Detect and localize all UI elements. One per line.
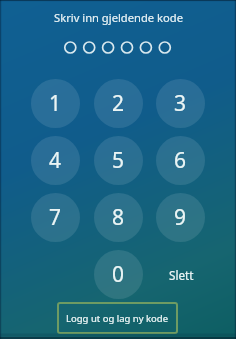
staticText: 6 (174, 146, 187, 175)
button[interactable]: Logg ut og lag ny kode (57, 302, 178, 334)
staticText: 5 (112, 146, 125, 175)
button[interactable]: 7 (31, 193, 80, 242)
staticText: 7 (49, 203, 62, 232)
button[interactable]: 8 (94, 193, 143, 242)
button[interactable]: 3 (156, 79, 205, 128)
button[interactable]: 1 (31, 79, 80, 128)
staticText: 9 (174, 203, 187, 232)
staticText: 4 (49, 146, 62, 175)
button[interactable]: 5 (94, 136, 143, 185)
staticText: 3 (174, 89, 187, 118)
staticText: 8 (112, 203, 125, 232)
button[interactable]: 6 (156, 136, 205, 185)
staticText: 2 (112, 89, 125, 118)
staticText: Logg ut og lag ny kode (66, 312, 169, 325)
staticText: 1 (49, 89, 62, 118)
button[interactable]: 9 (156, 193, 205, 242)
staticText: Skriv inn gjeldende kode (54, 10, 183, 25)
button[interactable]: Slett (151, 255, 211, 295)
button[interactable]: 0 (94, 250, 143, 299)
button[interactable]: 2 (94, 79, 143, 128)
button[interactable]: 4 (31, 136, 80, 185)
staticText: Slett (169, 267, 194, 283)
staticText: 0 (112, 260, 125, 289)
